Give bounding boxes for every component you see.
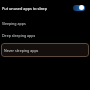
staticText: Never sleeping apps — [4, 48, 39, 53]
button[interactable]: Deep sleeping apps — [0, 30, 90, 41]
button[interactable]: Put unused apps to sleep — [0, 2, 90, 14]
button[interactable]: Sleeping apps — [0, 18, 90, 29]
staticText: Put unused apps to sleep — [2, 6, 73, 11]
staticText: Sleeping apps — [2, 21, 26, 26]
button[interactable]: Never sleeping apps — [1, 43, 89, 57]
button[interactable]: Put unused apps to sleep toggle — [73, 5, 85, 11]
staticText: Deep sleeping apps — [2, 33, 36, 38]
